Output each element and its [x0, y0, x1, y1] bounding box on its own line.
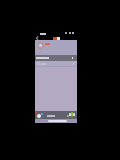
button[interactable] [35, 61, 77, 66]
button[interactable]: Back [34, 35, 40, 41]
button[interactable]: More options [65, 32, 74, 34]
button[interactable]: Profile [37, 42, 44, 49]
button[interactable]: Photos [69, 112, 75, 117]
button[interactable]: Account [37, 114, 41, 118]
